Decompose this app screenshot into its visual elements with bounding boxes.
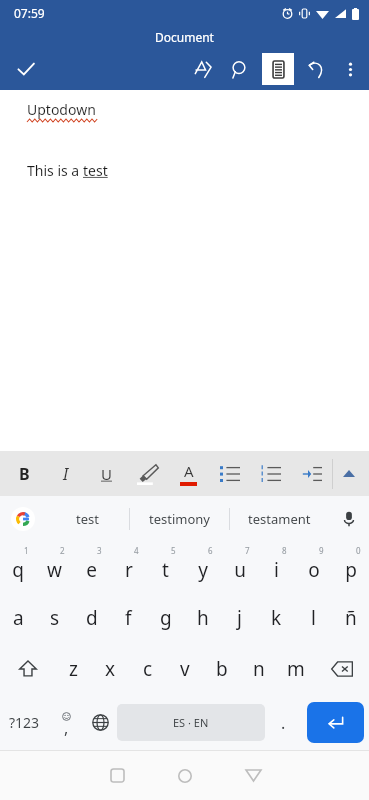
- button[interactable]: [209, 451, 250, 496]
- staticText: 8: [282, 545, 287, 556]
- button[interactable]: A: [168, 451, 209, 496]
- button[interactable]: [291, 451, 332, 496]
- staticText: v: [180, 656, 190, 682]
- staticText: p: [345, 557, 357, 583]
- button[interactable]: b: [203, 643, 240, 695]
- button[interactable]: More options: [335, 54, 365, 84]
- staticText: 4: [134, 545, 139, 556]
- button[interactable]: g: [147, 593, 184, 643]
- button[interactable]: t: [147, 541, 184, 593]
- button[interactable]: Done: [8, 51, 44, 87]
- button[interactable]: Shift: [0, 643, 55, 695]
- button[interactable]: Reading view: [262, 53, 294, 85]
- staticText: c: [143, 656, 153, 682]
- staticText: U: [101, 464, 112, 484]
- button[interactable]: Voice input: [329, 496, 369, 541]
- button[interactable]: j: [221, 593, 258, 643]
- button[interactable]: ñ: [332, 593, 369, 643]
- button[interactable]: k: [258, 593, 295, 643]
- button[interactable]: i: [258, 541, 295, 593]
- staticText: ?123: [9, 713, 40, 732]
- staticText: x: [105, 656, 116, 682]
- button[interactable]: s: [36, 593, 73, 643]
- button[interactable]: p: [332, 541, 369, 593]
- button[interactable]: Undo: [297, 50, 335, 88]
- button[interactable]: a: [0, 593, 36, 643]
- button[interactable]: ES · EN: [117, 704, 265, 741]
- button[interactable]: Home: [151, 751, 219, 800]
- button[interactable]: x: [92, 643, 129, 695]
- button[interactable]: q: [0, 541, 36, 593]
- button[interactable]: Search: [221, 50, 259, 88]
- button[interactable]: c: [129, 643, 166, 695]
- button[interactable]: y: [184, 541, 221, 593]
- staticText: m: [287, 656, 305, 682]
- button[interactable]: f: [110, 593, 147, 643]
- staticText: ñ: [345, 605, 357, 631]
- button[interactable]: Ink: [183, 50, 221, 88]
- button[interactable]: ?123: [0, 695, 49, 750]
- button[interactable]: h: [184, 593, 221, 643]
- button[interactable]: l: [295, 593, 332, 643]
- staticText: r: [125, 557, 133, 583]
- staticText: ES · EN: [173, 715, 209, 730]
- staticText: u: [234, 557, 246, 583]
- staticText: h: [197, 605, 209, 631]
- staticText: w: [47, 557, 62, 583]
- staticText: a: [13, 605, 24, 631]
- button[interactable]: B: [4, 451, 45, 496]
- button[interactable]: U: [86, 451, 127, 496]
- staticText: g: [160, 605, 172, 631]
- button[interactable]: n: [240, 643, 277, 695]
- button[interactable]: Enter: [307, 702, 364, 743]
- staticText: e: [86, 557, 97, 583]
- button[interactable]: Emoji and comma: [49, 695, 83, 750]
- staticText: 0: [356, 545, 361, 556]
- button[interactable]: w: [36, 541, 73, 593]
- button[interactable]: testament: [230, 496, 329, 541]
- staticText: b: [216, 656, 228, 682]
- staticText: 6: [208, 545, 213, 556]
- button[interactable]: z: [55, 643, 92, 695]
- button[interactable]: Google: [0, 496, 46, 541]
- staticText: i: [274, 557, 279, 583]
- button[interactable]: o: [295, 541, 332, 593]
- button[interactable]: u: [221, 541, 258, 593]
- staticText: k: [271, 605, 282, 631]
- staticText: testament: [248, 510, 311, 528]
- button[interactable]: Change keyboard language: [83, 695, 117, 750]
- button[interactable]: [250, 451, 291, 496]
- button[interactable]: [127, 451, 168, 496]
- staticText: 7: [245, 545, 250, 556]
- staticText: 2: [60, 545, 65, 556]
- button[interactable]: Backspace: [314, 643, 369, 695]
- button[interactable]: r: [110, 541, 147, 593]
- button[interactable]: d: [73, 593, 110, 643]
- staticText: test: [76, 510, 99, 528]
- staticText: I: [63, 463, 69, 485]
- staticText: n: [253, 656, 265, 682]
- button[interactable]: Recents: [83, 751, 151, 800]
- staticText: t: [162, 557, 169, 583]
- staticText: 5: [171, 545, 176, 556]
- staticText: 07:59: [14, 5, 45, 21]
- staticText: 1: [24, 545, 29, 556]
- button[interactable]: Collapse: [333, 451, 365, 496]
- staticText: Document: [155, 29, 214, 45]
- staticText: .: [281, 712, 286, 734]
- button[interactable]: .: [265, 695, 302, 750]
- staticText: 3: [97, 545, 102, 556]
- staticText: Uptodown: [27, 100, 96, 119]
- staticText: s: [50, 605, 60, 631]
- button[interactable]: m: [277, 643, 314, 695]
- button[interactable]: e: [73, 541, 110, 593]
- staticText: z: [69, 656, 78, 682]
- staticText: f: [125, 605, 132, 631]
- button[interactable]: Back: [219, 751, 287, 800]
- button[interactable]: v: [166, 643, 203, 695]
- staticText: test: [83, 161, 108, 180]
- button[interactable]: test: [46, 496, 129, 541]
- staticText: l: [311, 605, 316, 631]
- button[interactable]: I: [45, 451, 86, 496]
- button[interactable]: testimony: [130, 496, 229, 541]
